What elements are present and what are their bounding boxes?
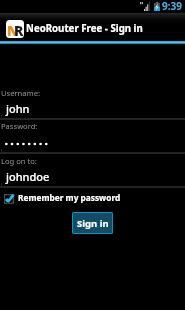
button[interactable]: john — [6, 101, 30, 116]
staticText: Remember my password — [18, 192, 121, 203]
staticText: 9:39 — [162, 0, 182, 13]
staticText: Password: — [1, 121, 38, 131]
button[interactable]: Remember my password — [4, 193, 121, 204]
staticText: NeoRouter Free - Sign in — [26, 22, 143, 35]
button[interactable]: Sign in — [72, 212, 113, 234]
button[interactable]: Password — [5, 141, 52, 147]
staticText: Log on to: — [1, 156, 37, 166]
staticText: N — [7, 21, 19, 38]
staticText: Username: — [1, 88, 40, 98]
staticText: R — [14, 21, 24, 38]
staticText: Sign in — [77, 217, 109, 230]
button[interactable]: johndoe — [6, 169, 50, 184]
